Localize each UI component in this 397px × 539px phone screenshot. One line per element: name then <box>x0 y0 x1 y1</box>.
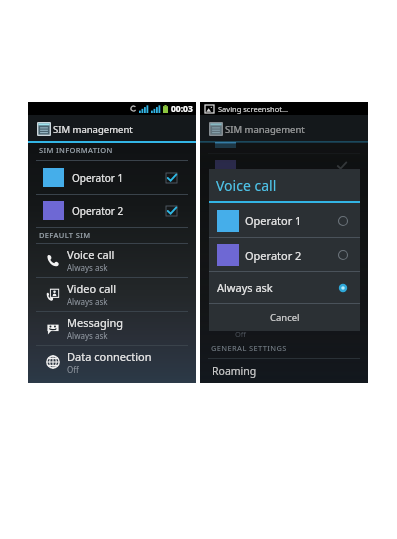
button[interactable]: Operator 1 <box>209 203 360 238</box>
staticText: Off <box>67 364 79 375</box>
button[interactable]: SIM management <box>200 115 368 142</box>
other: Enabled <box>166 206 177 216</box>
button[interactable]: Always ask <box>209 272 360 303</box>
staticText: Voice call <box>216 176 277 195</box>
other: Enabled <box>166 173 177 183</box>
staticText: SIM management <box>53 123 133 136</box>
staticText: Always ask <box>67 296 108 307</box>
button[interactable]: SIM management <box>28 115 196 142</box>
staticText: Off <box>235 329 247 339</box>
button[interactable]: Voice call <box>28 243 196 277</box>
staticText: SIM management <box>225 123 305 136</box>
staticText: Always ask <box>67 262 108 273</box>
button[interactable]: Messaging <box>28 311 196 345</box>
staticText: Operator 1 <box>245 213 338 228</box>
staticText: Data connection <box>67 349 152 364</box>
staticText: Operator 2 <box>72 204 166 218</box>
staticText: Roaming <box>212 364 257 378</box>
staticText: 00:03 <box>171 103 193 115</box>
button[interactable]: Cancel <box>209 304 360 331</box>
button[interactable]: Data connection <box>28 345 196 379</box>
button[interactable]: Operator 2 <box>28 194 196 227</box>
button[interactable]: Operator 1 <box>28 161 196 194</box>
staticText: Messaging <box>67 315 124 330</box>
staticText: Video call <box>67 281 117 296</box>
staticText: Operator 2 <box>245 248 338 263</box>
staticText: SIM INFORMATION <box>39 145 113 155</box>
staticText: DEFAULT SIM <box>39 230 91 240</box>
button[interactable]: Video call <box>28 277 196 311</box>
staticText: Always ask <box>67 330 108 341</box>
staticText: Voice call <box>67 247 115 262</box>
staticText: Cancel <box>270 311 300 324</box>
staticText: Operator 1 <box>72 171 166 185</box>
staticText: GENERAL SETTINGS <box>211 343 287 353</box>
staticText: Always ask <box>217 280 338 295</box>
staticText: Saving screenshot... <box>218 104 289 114</box>
button[interactable]: Operator 2 <box>209 238 360 272</box>
